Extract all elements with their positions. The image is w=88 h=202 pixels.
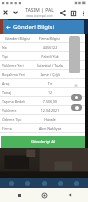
- button[interactable]: Back: [3, 22, 13, 32]
- button[interactable]: Araç: [0, 79, 88, 87]
- button[interactable]: No: [0, 43, 88, 51]
- button[interactable]: Gönderi Bilgisi: [0, 34, 34, 42]
- button[interactable]: More options: [78, 8, 88, 18]
- staticText: İzmir / Çiğli: [35, 72, 65, 77]
- button[interactable]: Download: [68, 8, 78, 18]
- staticText: No: [2, 45, 35, 50]
- staticText: İstanbul / Tuzla: [35, 63, 65, 68]
- staticText: 7.500,00: [35, 99, 65, 104]
- button[interactable]: Firma Bilgisi: [34, 34, 64, 42]
- button[interactable]: Profile: [72, 179, 81, 188]
- button[interactable]: Home: [37, 188, 51, 202]
- button[interactable]: Recent apps: [12, 188, 26, 202]
- button[interactable]: Gönderiyi Al: [1, 136, 85, 148]
- button[interactable]: Messages: [56, 179, 65, 188]
- staticText: TASIM | PAL: [25, 7, 54, 14]
- staticText: Taşıma Bedeli: [2, 99, 35, 104]
- staticText: Boşaltma Yeri: [2, 72, 35, 77]
- staticText: Gönderi Bilgisi: [13, 23, 55, 31]
- staticText: Tonaj: [2, 90, 35, 95]
- button[interactable]: Tonaj: [0, 88, 88, 96]
- button[interactable]: Home: [73, 82, 79, 88]
- staticText: Gönderiyi Al: [31, 139, 55, 145]
- button[interactable]: Taşıma Bedeli: [0, 97, 88, 105]
- button[interactable]: Call: [71, 94, 82, 101]
- button[interactable]: Share: [57, 7, 68, 18]
- button[interactable]: Firma: [0, 124, 88, 132]
- staticText: Paletli Yük: [35, 54, 65, 59]
- button[interactable]: Boşaltma Yeri: [0, 70, 88, 78]
- staticText: 12: [35, 90, 65, 95]
- staticText: Yükleme: [2, 108, 35, 113]
- button[interactable]: Close: [0, 7, 11, 18]
- staticText: www.tasimpal.com: [26, 14, 53, 18]
- staticText: 12.04.2021: [35, 108, 65, 113]
- button[interactable]: Home: [7, 179, 16, 188]
- button[interactable]: Message: [71, 104, 82, 111]
- staticText: Araç: [2, 81, 35, 86]
- button[interactable]: Yükleme Yeri: [0, 61, 88, 69]
- button[interactable]: Tipi: [0, 52, 88, 60]
- button[interactable]: Ödeme Tipi: [0, 115, 88, 123]
- staticText: Yükleme Yeri: [2, 63, 35, 68]
- button[interactable]: Back: [63, 188, 77, 202]
- staticText: Akın Nakliyat: [35, 126, 65, 131]
- staticText: Tır: [35, 81, 65, 86]
- staticText: Ödeme Tipi: [2, 117, 35, 122]
- button[interactable]: Search: [23, 179, 32, 188]
- staticText: Firma: [2, 126, 35, 131]
- button[interactable]: Add: [40, 179, 49, 188]
- staticText: Havale: [35, 117, 65, 122]
- staticText: Firma Bilgisi: [39, 36, 60, 41]
- button[interactable]: Site information: [11, 8, 20, 17]
- staticText: Gönderi Bilgisi: [5, 36, 30, 41]
- staticText: 4456122: [35, 45, 65, 50]
- button[interactable]: Yükleme: [0, 106, 88, 114]
- staticText: Tipi: [2, 54, 35, 59]
